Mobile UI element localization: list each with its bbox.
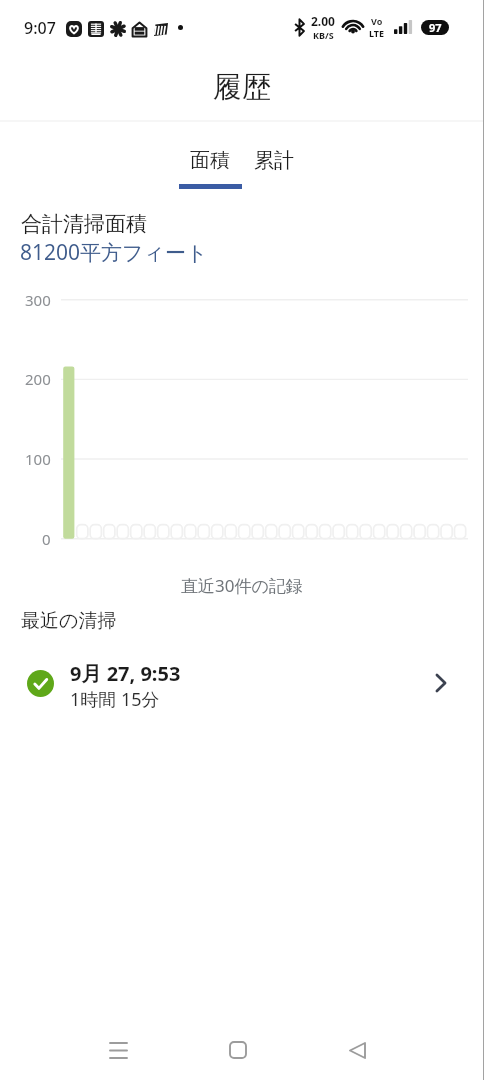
staticText: Vo xyxy=(371,15,383,27)
staticText: 最近の清掃 xyxy=(21,609,117,633)
staticText: 面積 xyxy=(190,148,230,173)
staticText: 2.00 xyxy=(311,13,335,29)
button[interactable]: 9月 27, 9:53 xyxy=(0,653,484,713)
other: Open cleaning details xyxy=(435,673,447,693)
button[interactable]: Home xyxy=(212,1024,264,1076)
staticText: 200 xyxy=(25,369,51,389)
button[interactable]: 面積 xyxy=(178,122,242,194)
button[interactable]: Back xyxy=(331,1024,383,1076)
staticText: LTE xyxy=(369,27,385,39)
button[interactable]: 累計 xyxy=(242,122,306,194)
staticText: 300 xyxy=(25,290,51,310)
staticText: 1時間 15分 xyxy=(70,687,160,712)
staticText: 9月 27, 9:53 xyxy=(70,660,181,687)
staticText: 直近30件の記録 xyxy=(181,574,303,597)
staticText: KB/S xyxy=(313,29,334,41)
staticText: 累計 xyxy=(254,148,294,173)
staticText: 9:07 xyxy=(24,17,56,39)
button[interactable]: Recent apps xyxy=(92,1024,144,1076)
staticText: 履歴 xyxy=(213,69,271,106)
staticText: 97 xyxy=(429,20,442,35)
staticText: 81200平方フィート xyxy=(20,238,208,267)
staticText: 合計清掃面積 xyxy=(21,211,147,237)
staticText: 100 xyxy=(25,449,51,469)
staticText: 0 xyxy=(42,529,51,549)
